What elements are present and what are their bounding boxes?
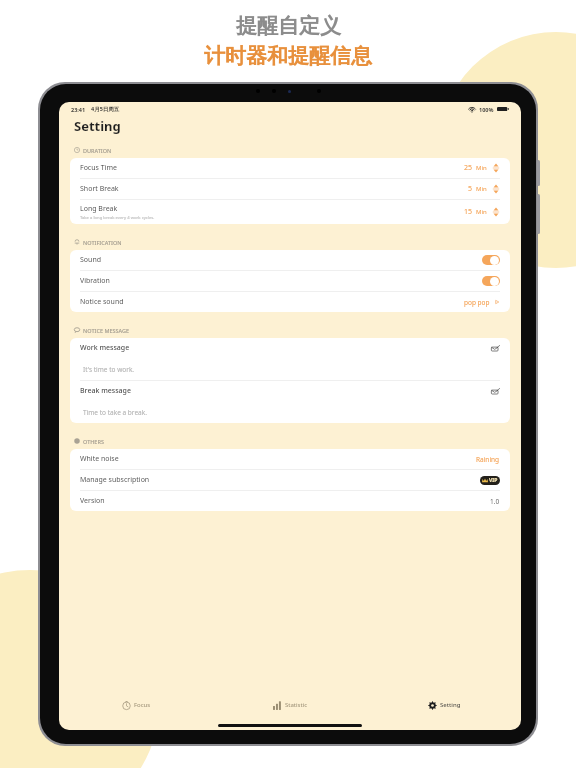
button[interactable]: Adjust Short Break [492, 183, 500, 195]
button[interactable]: Vibration toggle [482, 276, 500, 286]
staticText: DURATION [83, 147, 112, 154]
staticText: Break message [80, 386, 131, 396]
staticText: pop pop [464, 298, 490, 307]
staticText: Notice sound [80, 297, 124, 307]
staticText: 23:41 [71, 106, 86, 113]
staticText: Take a long break every 4 work cycles. [80, 215, 155, 221]
button[interactable]: Break message [70, 381, 510, 423]
button[interactable]: Version [70, 491, 510, 511]
staticText: Manage subscription [80, 475, 150, 485]
button[interactable]: Adjust Long Break [492, 206, 500, 218]
button[interactable]: Vibration [70, 271, 510, 291]
staticText: Vibration [80, 276, 110, 286]
button[interactable]: Work message [70, 338, 510, 380]
staticText: 提醒自定义 [236, 13, 341, 39]
staticText: NOTICE MESSAGE [83, 327, 130, 334]
other: Edit Break message [491, 388, 500, 395]
staticText: NOTIFICATION [83, 239, 122, 246]
button[interactable]: Sound toggle [482, 255, 500, 265]
staticText: Time to take a break. [83, 408, 147, 417]
staticText: Raining [476, 455, 500, 464]
button[interactable]: Manage subscription [70, 470, 510, 490]
button[interactable]: White noise [70, 449, 510, 469]
staticText: Focus Time [80, 163, 117, 173]
staticText: 25 [464, 163, 473, 173]
staticText: VIP [489, 477, 498, 484]
button[interactable]: Focus [59, 690, 213, 720]
staticText: Sound [80, 255, 102, 265]
staticText: 100% [479, 106, 494, 113]
button[interactable]: Notice sound [70, 292, 510, 312]
button[interactable]: Short Break [70, 179, 510, 199]
staticText: OTHERS [83, 438, 104, 445]
staticText: Setting [74, 117, 121, 135]
button[interactable]: Setting [367, 690, 521, 720]
staticText: 5 [468, 184, 473, 194]
staticText: Min [476, 185, 487, 193]
button[interactable]: Focus Time [70, 158, 510, 178]
staticText: 1.0 [490, 497, 500, 506]
button[interactable]: Statistic [213, 690, 367, 720]
other: Edit Work message [491, 345, 500, 352]
button[interactable]: Long Break [70, 200, 510, 224]
button[interactable]: Adjust Focus Time [492, 162, 500, 174]
staticText: Focus [134, 701, 151, 709]
staticText: 计时器和提醒信息 [204, 43, 372, 69]
staticText: Short Break [80, 184, 119, 194]
button[interactable]: Sound [70, 250, 510, 270]
staticText: White noise [80, 454, 119, 464]
staticText: Work message [80, 343, 130, 353]
staticText: Setting [440, 701, 461, 709]
staticText: Statistic [285, 701, 308, 709]
staticText: Min [476, 164, 487, 172]
staticText: It's time to work. [83, 365, 135, 374]
staticText: Long Break [80, 204, 118, 214]
staticText: 4月5日周五 [91, 105, 120, 113]
staticText: Version [80, 496, 105, 506]
staticText: Min [476, 208, 487, 216]
staticText: 15 [464, 207, 473, 217]
